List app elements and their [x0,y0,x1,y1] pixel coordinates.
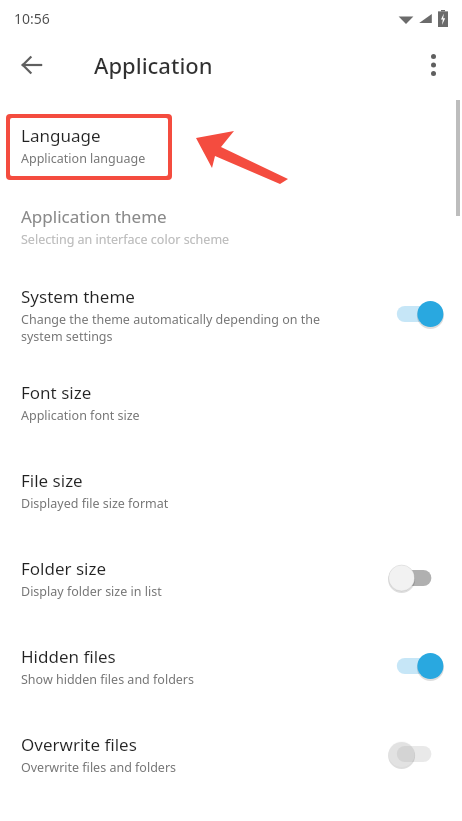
staticText: Change the theme automatically depending… [21,311,352,344]
button[interactable]: Hidden files [0,622,462,710]
staticText: 10:56 [14,9,50,28]
button[interactable]: Overwrite files toggle [388,734,444,774]
staticText: System theme [21,285,135,308]
button[interactable]: Overwrite files [0,710,462,798]
button[interactable]: File size [0,446,462,534]
staticText: Language [21,124,101,147]
button[interactable] [0,94,462,182]
button[interactable]: Font size [0,358,462,446]
staticText: Hidden files [21,645,116,668]
button[interactable]: System theme toggle [388,294,444,334]
staticText: Display folder size in list [21,583,162,600]
button[interactable]: Folder size [0,534,462,622]
button[interactable]: More options [410,42,456,88]
staticText: Overwrite files and folders [21,759,177,776]
staticText: Application theme [21,205,167,228]
staticText: File size [21,469,83,492]
staticText: Folder size [21,557,107,580]
staticText: Application font size [21,407,140,424]
staticText: Displayed file size format [21,495,169,512]
staticText: Selecting an interface color scheme [21,231,230,248]
button[interactable]: Hidden files toggle [388,646,444,686]
button[interactable]: Folder size toggle [388,558,444,598]
button[interactable]: System theme [0,270,462,358]
staticText: Font size [21,381,92,404]
staticText: Application language [21,150,146,167]
button[interactable]: Application theme [0,182,462,270]
staticText: Application [94,50,213,80]
staticText: Show hidden files and folders [21,671,195,688]
staticText: Overwrite files [21,733,137,756]
button[interactable]: Back [8,41,56,89]
